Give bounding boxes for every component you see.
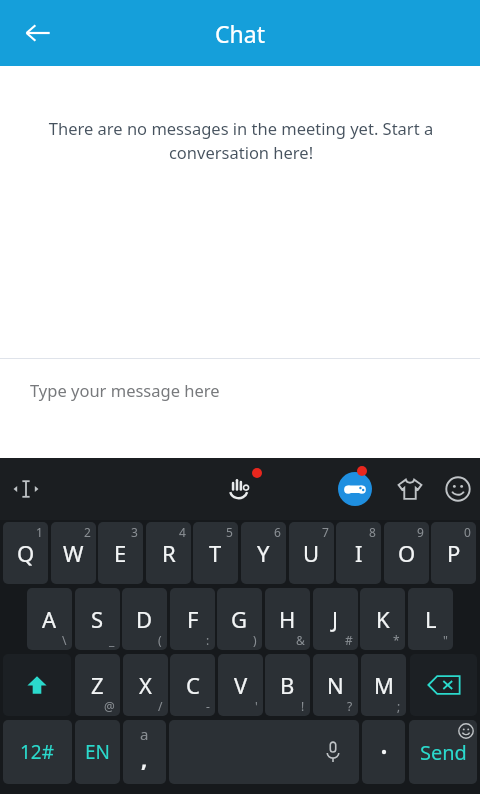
button[interactable]: Y xyxy=(241,522,286,584)
staticText: - xyxy=(206,698,210,714)
staticText: a xyxy=(140,724,149,744)
button[interactable]: I xyxy=(336,522,381,584)
button[interactable]: W xyxy=(51,522,96,584)
staticText: 6 xyxy=(274,524,281,540)
staticText: D xyxy=(136,604,153,634)
staticText: N xyxy=(327,670,344,700)
staticText: " xyxy=(443,632,448,648)
button[interactable]: E xyxy=(98,522,143,584)
button[interactable]: Type your message here xyxy=(0,359,480,458)
button[interactable]: A xyxy=(27,588,72,650)
staticText: : xyxy=(206,632,210,648)
staticText: W xyxy=(63,538,84,568)
staticText: 2 xyxy=(84,524,91,540)
staticText: A xyxy=(42,604,57,634)
button[interactable]: S xyxy=(75,588,120,650)
staticText: G xyxy=(231,604,248,634)
staticText: P xyxy=(447,538,461,568)
staticText: 12# xyxy=(20,739,55,765)
button[interactable]: C xyxy=(170,654,215,716)
staticText: Send xyxy=(420,739,467,766)
staticText: L xyxy=(425,604,437,634)
staticText: B xyxy=(280,670,295,700)
staticText: Z xyxy=(91,670,104,700)
button[interactable]: a xyxy=(123,720,166,784)
button[interactable]: O xyxy=(384,522,429,584)
button[interactable]: R xyxy=(146,522,191,584)
staticText: 5 xyxy=(226,524,233,540)
button[interactable]: Send xyxy=(409,720,477,784)
staticText: 1 xyxy=(36,524,43,540)
button[interactable]: P xyxy=(431,522,476,584)
staticText: ) xyxy=(253,632,257,648)
staticText: ; xyxy=(397,698,401,714)
button[interactable]: TouchPal xyxy=(218,466,264,512)
staticText: * xyxy=(393,632,400,648)
button[interactable]: L xyxy=(408,588,453,650)
staticText: / xyxy=(158,698,163,714)
staticText: O xyxy=(398,538,416,568)
button[interactable]: Back xyxy=(14,9,62,57)
staticText: X xyxy=(139,670,152,700)
button[interactable]: N xyxy=(313,654,358,716)
staticText: ! xyxy=(301,698,305,714)
staticText: # xyxy=(345,632,353,648)
button[interactable]: Space xyxy=(169,720,359,784)
staticText: 3 xyxy=(131,524,138,540)
staticText: K xyxy=(376,604,390,634)
staticText: 9 xyxy=(417,524,424,540)
staticText: J xyxy=(332,604,339,634)
button[interactable]: V xyxy=(218,654,263,716)
staticText: ? xyxy=(347,698,353,714)
staticText: M xyxy=(374,670,394,700)
button[interactable]: G xyxy=(217,588,262,650)
staticText: 4 xyxy=(179,524,186,540)
staticText: , xyxy=(141,743,148,773)
staticText: R xyxy=(162,538,176,568)
button[interactable]: 12# xyxy=(3,720,72,784)
button[interactable]: Shift xyxy=(3,654,71,716)
staticText: C xyxy=(186,670,200,700)
staticText: U xyxy=(303,538,320,568)
button[interactable]: H xyxy=(265,588,310,650)
staticText: Q xyxy=(17,538,35,568)
staticText: E xyxy=(114,538,127,568)
staticText: T xyxy=(209,538,222,568)
staticText: ' xyxy=(255,698,258,714)
button[interactable]: Z xyxy=(75,654,120,716)
staticText: & xyxy=(296,632,305,648)
staticText: \ xyxy=(62,632,67,648)
staticText: Chat xyxy=(215,18,265,49)
button[interactable]: T xyxy=(193,522,238,584)
button[interactable]: Backspace xyxy=(410,654,477,716)
button[interactable]: J xyxy=(313,588,358,650)
button[interactable]: Games xyxy=(332,466,378,512)
staticText: S xyxy=(91,604,104,634)
button[interactable]: U xyxy=(289,522,334,584)
staticText: Type your message here xyxy=(30,379,220,401)
button[interactable]: Themes xyxy=(388,467,432,511)
staticText: H xyxy=(279,604,296,634)
button[interactable]: K xyxy=(360,588,405,650)
button[interactable]: EN xyxy=(75,720,120,784)
button[interactable]: X xyxy=(123,654,168,716)
staticText: I xyxy=(355,538,363,568)
staticText: 8 xyxy=(369,524,376,540)
staticText: 7 xyxy=(322,524,329,540)
button[interactable]: Q xyxy=(3,522,48,584)
button[interactable]: Period xyxy=(362,720,405,784)
staticText: There are no messages in the meeting yet… xyxy=(34,117,448,164)
button[interactable]: D xyxy=(122,588,167,650)
button[interactable]: B xyxy=(265,654,310,716)
staticText: Y xyxy=(257,538,270,568)
button[interactable]: F xyxy=(170,588,215,650)
staticText: F xyxy=(187,604,199,634)
staticText: 0 xyxy=(464,524,471,540)
staticText: @ xyxy=(104,698,115,714)
button[interactable]: Emoji xyxy=(436,467,480,511)
button[interactable]: M xyxy=(361,654,406,716)
staticText: ( xyxy=(158,632,162,648)
staticText: EN xyxy=(85,739,111,765)
staticText: V xyxy=(234,670,248,700)
button[interactable]: Move cursor xyxy=(4,467,48,511)
